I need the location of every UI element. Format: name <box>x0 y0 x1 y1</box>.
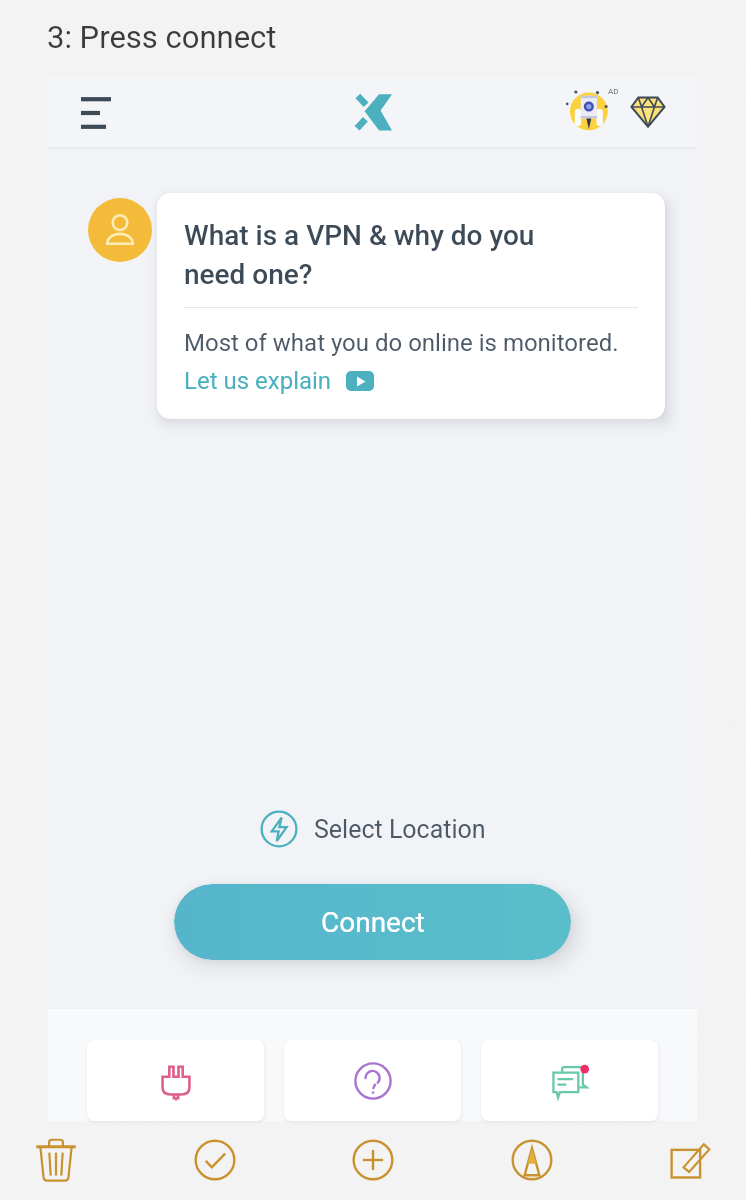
button[interactable]: Delete <box>24 1128 88 1192</box>
staticText: AD <box>608 87 619 96</box>
button[interactable]: Select Location <box>250 806 496 852</box>
staticText: Let us explain <box>184 367 332 395</box>
button[interactable]: Ad <box>563 84 619 140</box>
other: Support chat <box>547 1058 593 1104</box>
staticText: Connect <box>321 906 425 939</box>
button[interactable]: Edit <box>658 1128 722 1192</box>
staticText: Select Location <box>314 815 486 844</box>
button[interactable]: Premium <box>620 84 676 140</box>
staticText: Most of what you do online is monitored. <box>184 329 619 357</box>
button[interactable]: Add <box>341 1128 405 1192</box>
staticText: 3: Press connect <box>47 19 277 55</box>
button[interactable]: Profile <box>88 198 152 262</box>
button[interactable]: What is a VPN & why do you need one? <box>157 193 665 419</box>
button[interactable]: Draw <box>500 1128 564 1192</box>
button[interactable]: Help <box>284 1040 461 1121</box>
other: Help <box>351 1059 395 1103</box>
staticText: What is a VPN & why do you need one? <box>184 219 535 291</box>
button[interactable]: Connect <box>174 884 571 960</box>
button[interactable]: Power <box>87 1040 264 1121</box>
button[interactable]: Menu <box>67 85 123 141</box>
other: Power <box>155 1060 197 1102</box>
button[interactable]: X VPN logo <box>345 84 401 140</box>
button[interactable]: Done <box>183 1128 247 1192</box>
button[interactable]: Support chat <box>481 1040 658 1121</box>
